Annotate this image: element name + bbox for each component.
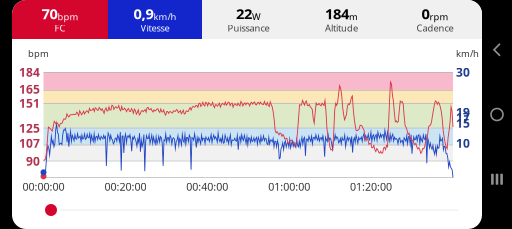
staticText: 0,9 [133, 4, 153, 23]
staticText: m [349, 10, 358, 23]
staticText: 184 [19, 64, 40, 80]
button[interactable]: Recents [482, 164, 512, 194]
staticText: 01:00:00 [268, 179, 310, 194]
staticText: 00:00:00 [22, 179, 64, 194]
staticText: 22 [236, 4, 252, 23]
button[interactable]: 22 [202, 0, 295, 39]
staticText: km/h [456, 47, 479, 60]
staticText: 01:20:00 [350, 179, 392, 194]
button[interactable]: Home [482, 99, 512, 129]
staticText: 107 [19, 135, 40, 151]
button[interactable]: Back [482, 35, 512, 65]
staticText: 125 [19, 120, 40, 136]
staticText: rpm [429, 10, 448, 23]
staticText: km/h [153, 10, 176, 23]
staticText: Altitude [325, 22, 358, 34]
staticText: 184 [325, 4, 349, 23]
staticText: 70 [41, 4, 57, 23]
button[interactable]: 0,9 [108, 0, 202, 39]
staticText: Vitesse [140, 22, 169, 34]
staticText: 90 [26, 153, 40, 169]
button[interactable]: 184 [295, 0, 388, 39]
staticText: bpm [28, 47, 49, 60]
staticText: Puissance [227, 22, 269, 34]
staticText: 151 [19, 95, 40, 111]
staticText: 30 [456, 64, 470, 80]
staticText: W [252, 10, 261, 23]
button[interactable]: 70 [12, 0, 108, 39]
staticText: 17 [456, 109, 470, 125]
staticText: 00:40:00 [186, 179, 228, 194]
staticText: 19 [456, 104, 470, 120]
staticText: 0 [421, 4, 429, 23]
staticText: FC [54, 22, 65, 34]
staticText: 10 [456, 135, 470, 151]
staticText: 15 [456, 115, 470, 131]
button[interactable]: Timeline scrubber [18, 197, 458, 223]
staticText: bpm [57, 10, 78, 23]
button[interactable]: 0 [388, 0, 482, 39]
staticText: 165 [19, 81, 40, 97]
staticText: 00:20:00 [104, 179, 146, 194]
staticText: Cadence [416, 22, 453, 34]
